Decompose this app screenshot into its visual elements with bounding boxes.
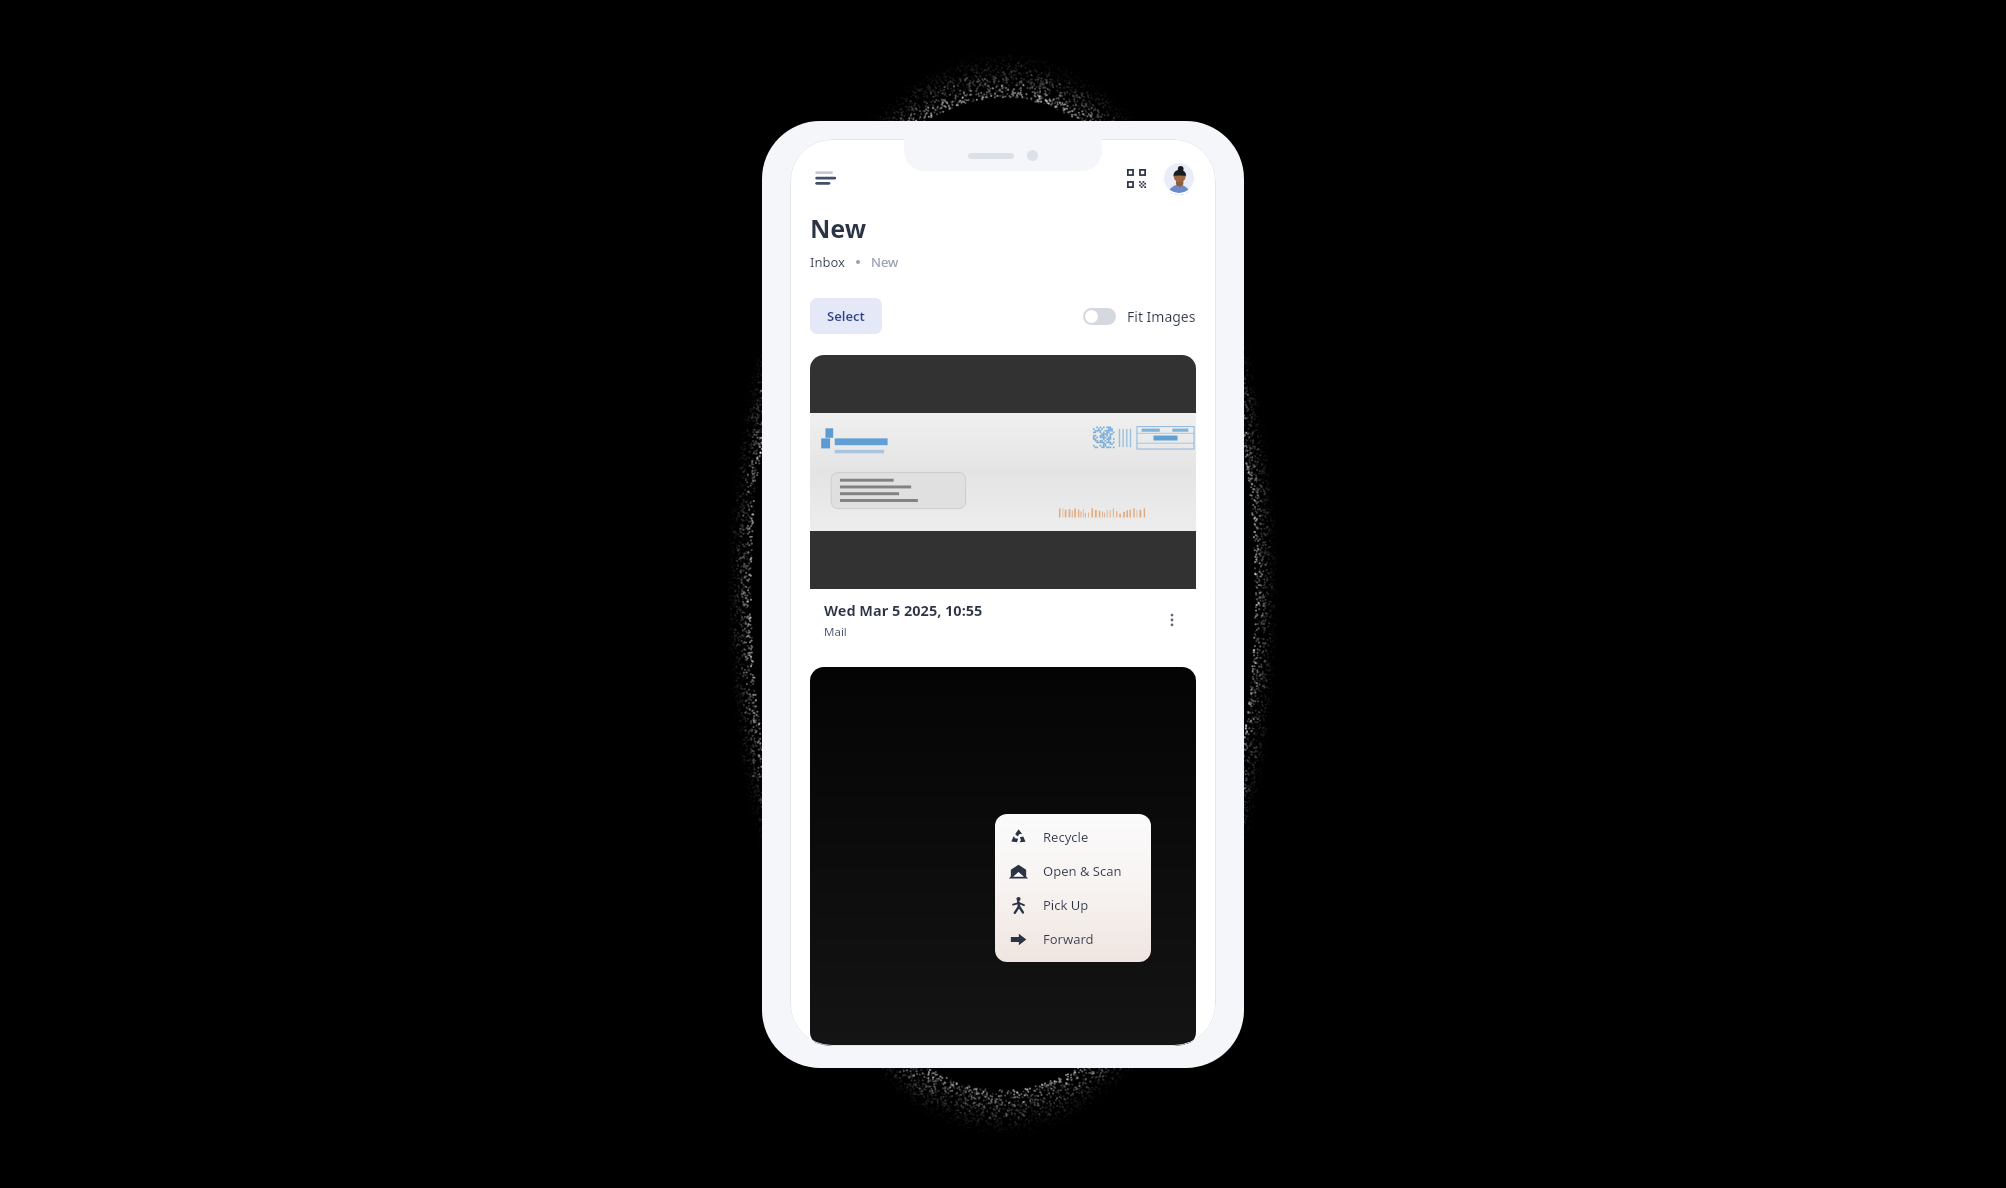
staticText: Wed Mar 5 2025, 10:55 <box>824 600 983 620</box>
button[interactable]: New <box>871 253 899 271</box>
button[interactable]: Open & Scan <box>995 854 1151 888</box>
staticText: Forward <box>1043 930 1094 948</box>
staticText: Recycle <box>1043 828 1089 846</box>
button[interactable]: Fit Images <box>1083 307 1196 326</box>
button[interactable]: Open navigation menu <box>810 163 840 193</box>
button[interactable] <box>810 667 1196 1046</box>
staticText: Fit Images <box>1127 307 1196 326</box>
button[interactable]: Profile <box>1162 161 1196 195</box>
button[interactable]: Pick Up <box>995 888 1151 922</box>
button[interactable]: Scan QR code <box>1120 162 1152 194</box>
staticText: Mail <box>824 624 847 640</box>
button[interactable]: Inbox <box>810 253 845 271</box>
button[interactable]: Forward <box>995 922 1151 956</box>
button[interactable]: More options <box>1158 606 1186 634</box>
button[interactable]: Recycle <box>995 820 1151 854</box>
staticText: Select <box>827 307 865 325</box>
staticText: New <box>810 211 867 245</box>
button[interactable]: Select <box>810 298 882 334</box>
staticText: Open & Scan <box>1043 862 1122 880</box>
button[interactable]: Wed Mar 5 2025, 10:55 <box>810 355 1196 653</box>
staticText: Pick Up <box>1043 896 1089 914</box>
